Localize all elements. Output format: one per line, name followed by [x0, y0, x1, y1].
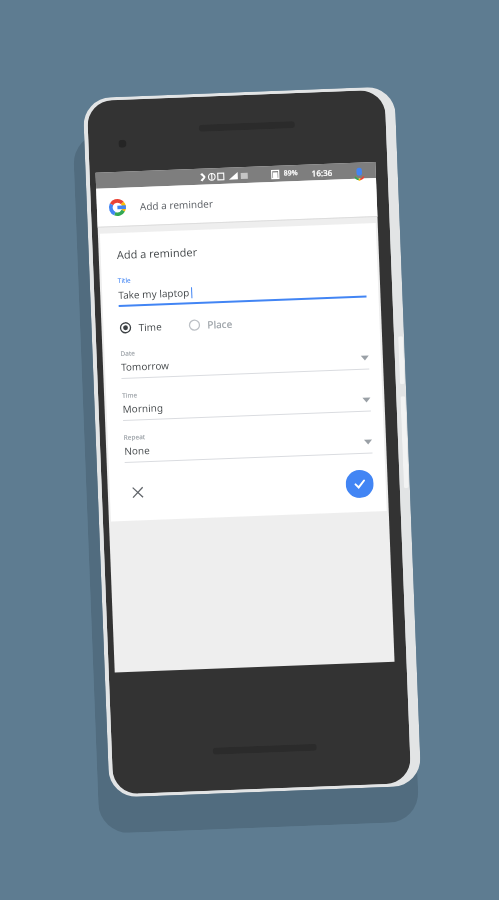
staticText: 16:36 [311, 167, 333, 178]
button[interactable]: Voice search [347, 162, 370, 185]
button[interactable]: Add a reminder [96, 178, 377, 227]
button[interactable]: Save reminder [345, 469, 374, 498]
staticText: Time [138, 319, 163, 334]
staticText: Repeat [124, 432, 146, 442]
button[interactable]: Time [119, 319, 163, 335]
button[interactable]: Date [120, 339, 369, 379]
staticText: Take my laptop [118, 285, 190, 302]
staticText: None [124, 435, 364, 458]
button[interactable]: Time [122, 381, 371, 421]
button[interactable]: Place [188, 317, 233, 332]
staticText: Title [117, 275, 131, 285]
staticText: Date [120, 348, 136, 358]
staticText: Add a reminder [140, 196, 214, 213]
staticText: Place [207, 317, 233, 332]
staticText: Morning [122, 393, 363, 416]
staticText: 89% [283, 168, 298, 179]
button[interactable]: Cancel [125, 480, 150, 505]
button[interactable]: Repeat [124, 423, 373, 463]
staticText: Add a reminder [116, 244, 198, 262]
staticText: Time [122, 390, 138, 400]
staticText: Tomorrow [121, 351, 361, 374]
